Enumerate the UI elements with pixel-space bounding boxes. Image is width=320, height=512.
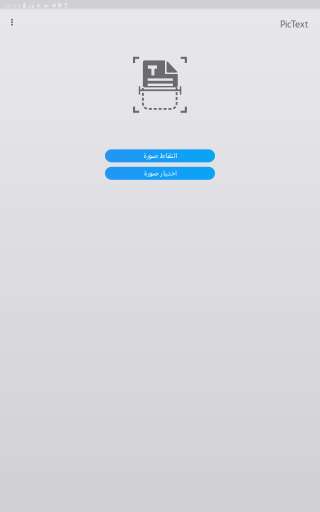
button[interactable]: More options [0, 10, 24, 38]
staticText: 10:44 [3, 1, 21, 10]
button[interactable]: التقاط صورة [105, 149, 215, 162]
staticText: اختيار صورة [143, 166, 176, 181]
button[interactable]: اختيار صورة [105, 167, 215, 180]
staticText: التقاط صورة [143, 148, 177, 163]
staticText: PicText [280, 18, 308, 30]
